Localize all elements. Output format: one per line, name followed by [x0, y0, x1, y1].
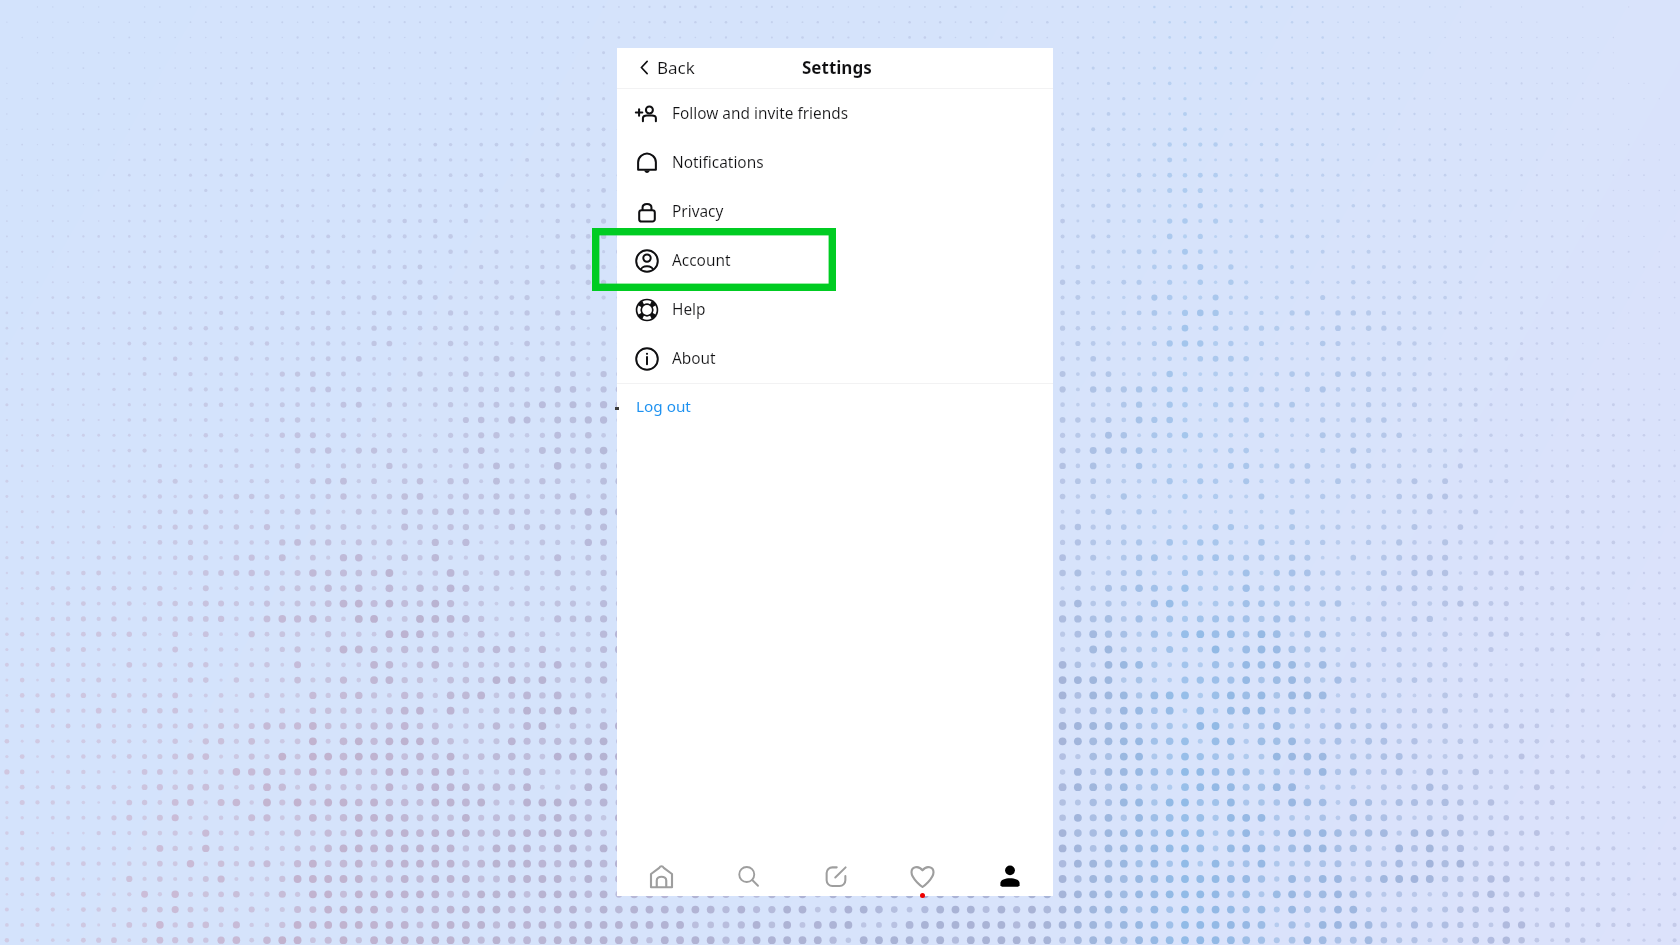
button[interactable]: Activity	[879, 856, 966, 896]
button[interactable]: Log out	[617, 384, 1053, 428]
button[interactable]: Search	[705, 856, 792, 896]
button[interactable]: Profile	[966, 856, 1053, 896]
staticText: Back	[657, 56, 695, 79]
staticText: Notifications	[672, 152, 764, 173]
staticText: Settings	[802, 56, 872, 79]
staticText: Follow and invite friends	[672, 103, 849, 124]
staticText: Account	[672, 250, 731, 271]
button[interactable]: Account	[617, 236, 1053, 285]
button[interactable]: Follow and invite friends	[617, 89, 1053, 138]
button[interactable]: Home	[617, 856, 705, 896]
staticText: Privacy	[672, 201, 724, 222]
button[interactable]: Notifications	[617, 138, 1053, 187]
staticText: Log out	[636, 396, 691, 417]
button[interactable]: Back	[635, 48, 695, 88]
button[interactable]: Compose	[792, 856, 879, 896]
staticText: Help	[672, 299, 706, 320]
button[interactable]: About	[617, 334, 1053, 383]
button[interactable]: Help	[617, 285, 1053, 334]
staticText: About	[672, 348, 716, 369]
button[interactable]: Privacy	[617, 187, 1053, 236]
